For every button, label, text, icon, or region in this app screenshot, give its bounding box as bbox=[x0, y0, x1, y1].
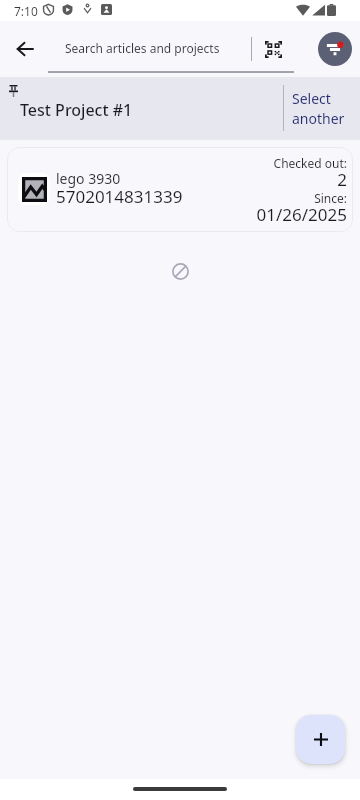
staticText: Select another bbox=[292, 89, 345, 129]
button[interactable]: Select another bbox=[292, 89, 345, 129]
staticText: Search articles and projects bbox=[65, 40, 220, 56]
staticText: Since: bbox=[7, 190, 347, 206]
staticText: 7:10 bbox=[14, 3, 38, 19]
staticText: lego 3930 bbox=[56, 169, 121, 188]
button[interactable]: Filter bbox=[318, 32, 352, 66]
button[interactable]: Add item bbox=[296, 715, 345, 764]
staticText: 5702014831339 bbox=[56, 185, 183, 208]
button[interactable]: lego 3930 bbox=[7, 147, 353, 232]
staticText: 2 bbox=[7, 168, 347, 191]
staticText: 01/26/2025 bbox=[7, 203, 347, 226]
button[interactable]: Back bbox=[4, 28, 46, 70]
button[interactable]: Scan barcode bbox=[257, 33, 289, 65]
staticText: Checked out: bbox=[7, 155, 347, 171]
staticText: Test Project #1 bbox=[20, 99, 133, 121]
